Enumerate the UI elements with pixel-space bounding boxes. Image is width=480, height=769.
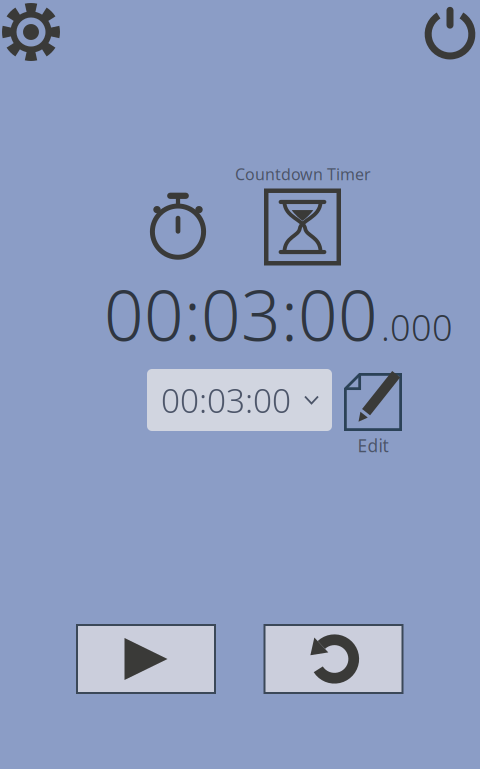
staticText: 00:03:00 <box>104 268 378 360</box>
button[interactable]: Power <box>416 0 480 65</box>
button[interactable]: 00:03:00 <box>147 369 332 431</box>
button[interactable]: Edit <box>344 373 402 457</box>
button[interactable]: Start <box>77 625 215 693</box>
staticText: Edit <box>357 434 388 457</box>
button[interactable]: Reset <box>264 625 402 693</box>
staticText: .000 <box>381 303 453 351</box>
button[interactable]: Settings <box>0 0 65 66</box>
staticText: Countdown Timer <box>235 163 371 185</box>
staticText: 00:03:00 <box>161 378 291 422</box>
